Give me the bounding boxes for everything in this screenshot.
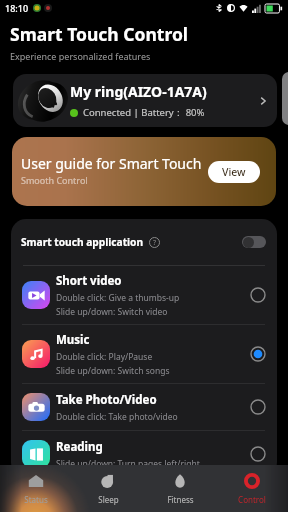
staticText: Double click: Play/Pause: [56, 351, 153, 363]
staticText: Experience personalized features: [10, 50, 151, 62]
button[interactable]: Status: [0, 465, 72, 512]
staticText: Smooth Control: [21, 174, 88, 186]
staticText: Double click: Give a thumbs-up: [56, 292, 180, 304]
button[interactable]: Music: [11, 325, 277, 383]
staticText: Slide up/down: Switch songs: [56, 365, 170, 377]
staticText: Take Photo/Video: [56, 392, 157, 408]
staticText: 18:10: [5, 2, 29, 14]
staticText: Fitness: [167, 494, 194, 505]
staticText: Sleep: [98, 494, 119, 505]
staticText: Short video: [56, 273, 122, 289]
staticText: Slide up/down: Switch video: [56, 306, 168, 318]
button[interactable]: Take Photo/Video: [11, 384, 277, 430]
button[interactable]: Short video: [11, 266, 277, 324]
staticText: ?: [153, 238, 157, 248]
button[interactable]: Fitness: [144, 465, 216, 512]
button[interactable]: Toggle smart touch: [242, 236, 266, 248]
staticText: My ring(AIZO-1A7A): [70, 82, 207, 101]
staticText: View: [222, 165, 246, 179]
button[interactable]: User guide for Smart Touch: [12, 137, 276, 206]
button[interactable]: Help: [149, 237, 160, 248]
staticText: User guide for Smart Touch: [21, 154, 202, 173]
button[interactable]: Take Photo/Video select: [250, 399, 266, 415]
button[interactable]: Reading select: [250, 446, 266, 462]
staticText: Reading: [56, 439, 103, 455]
staticText: Music: [56, 332, 90, 348]
staticText: Connected | Battery： 80%: [83, 106, 205, 119]
staticText: Smart Touch Control: [10, 22, 189, 46]
button[interactable]: Sleep: [72, 465, 144, 512]
staticText: Status: [24, 494, 48, 505]
staticText: Double click: Take photo/video: [56, 411, 178, 423]
button[interactable]: View: [208, 161, 260, 183]
button[interactable]: Short video select: [250, 287, 266, 303]
button[interactable]: My ring(AIZO-1A7A): [13, 74, 277, 127]
button[interactable]: Reading: [11, 431, 277, 477]
button[interactable]: Device details: [255, 93, 271, 109]
button[interactable]: Music select: [250, 346, 266, 362]
staticText: Smart touch application: [21, 235, 144, 249]
staticText: Slide up/down: Turn pages left/right: [56, 458, 200, 470]
staticText: Control: [238, 494, 266, 505]
button[interactable]: Control: [216, 465, 288, 512]
